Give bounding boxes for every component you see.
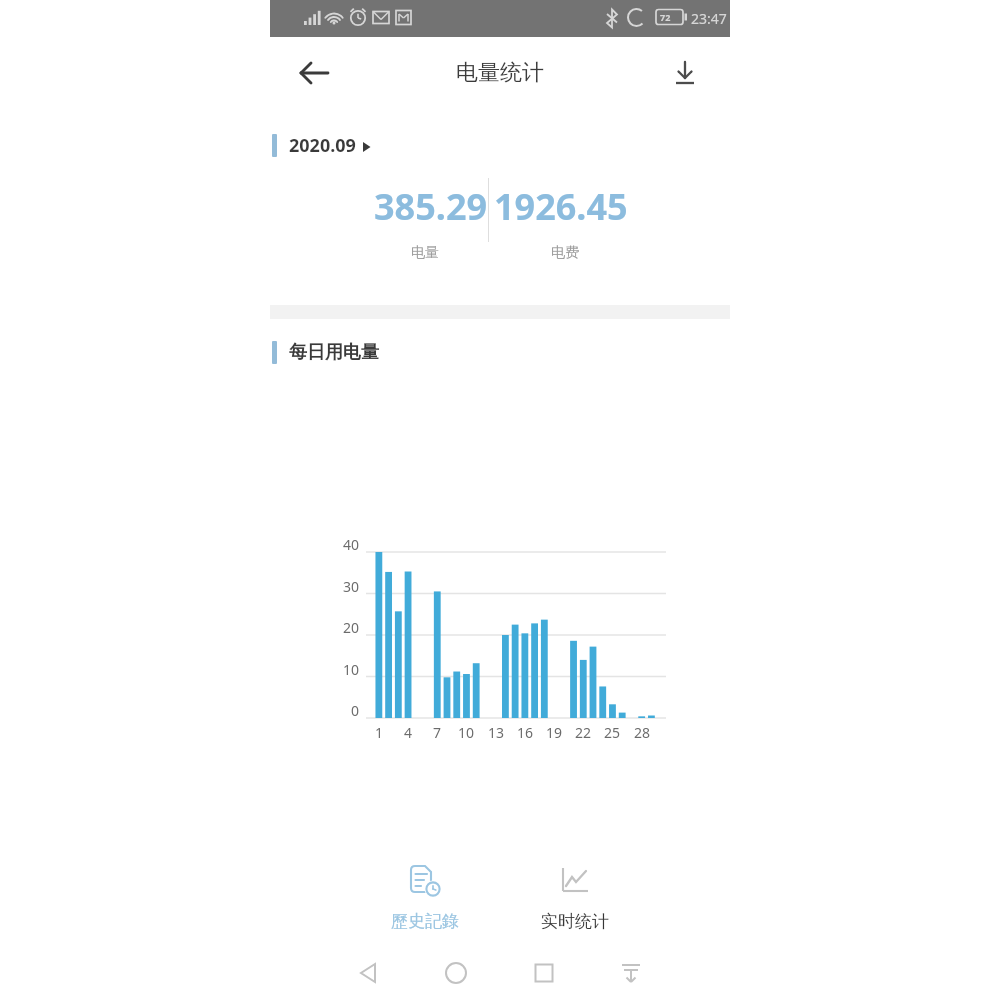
staticText: 40 <box>343 535 360 554</box>
button[interactable]: 歷史記錄 <box>350 855 500 945</box>
staticText: 4 <box>404 723 413 742</box>
staticText: 1926.45 <box>494 182 628 231</box>
button[interactable]: Back <box>292 50 338 96</box>
button[interactable]: 2020.09 <box>270 128 730 162</box>
staticText: 20 <box>343 618 360 637</box>
staticText: 1 <box>375 723 384 742</box>
staticText: 30 <box>343 577 360 596</box>
staticText: 13 <box>488 723 505 742</box>
button[interactable]: Recent apps <box>523 952 565 994</box>
staticText: 16 <box>517 723 534 742</box>
button[interactable]: Download <box>664 52 706 94</box>
staticText: 72 <box>660 11 671 23</box>
staticText: 2020.09 <box>289 133 356 158</box>
staticText: 歷史記錄 <box>391 911 459 932</box>
staticText: 22 <box>575 723 592 742</box>
staticText: 19 <box>546 723 563 742</box>
staticText: 电费 <box>551 244 579 262</box>
button[interactable]: 实时统计 <box>500 855 650 945</box>
staticText: 385.29 <box>374 182 488 231</box>
staticText: 28 <box>634 723 651 742</box>
staticText: 实时统计 <box>541 911 609 932</box>
staticText: 电量 <box>411 244 439 262</box>
staticText: 0 <box>351 701 360 720</box>
staticText: 10 <box>343 660 360 679</box>
staticText: 7 <box>433 723 442 742</box>
staticText: 25 <box>604 723 621 742</box>
button[interactable]: Hide navigation bar <box>610 952 652 994</box>
staticText: 每日用电量 <box>289 341 379 364</box>
button[interactable]: Home <box>435 952 477 994</box>
staticText: 电量统计 <box>456 59 544 87</box>
staticText: 23:47 <box>691 9 727 28</box>
staticText: 10 <box>458 723 475 742</box>
button[interactable]: Back <box>348 952 390 994</box>
button[interactable]: 每日用电量 <box>270 335 730 369</box>
